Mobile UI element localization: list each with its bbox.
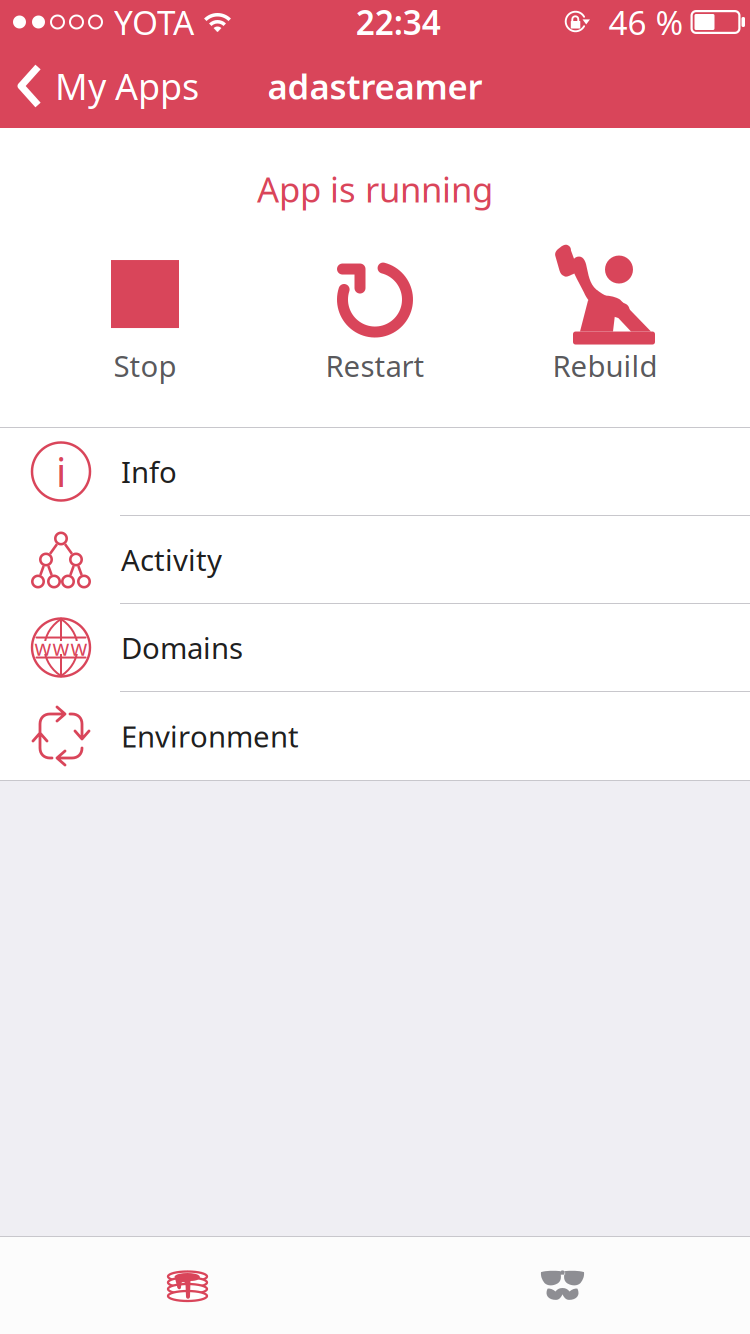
button[interactable]: Rebuild [490,228,720,393]
staticText: w [70,633,87,662]
button[interactable]: My Apps [0,51,250,121]
staticText: Domains [121,628,243,667]
staticText: Restart [325,346,424,385]
staticText: App is running [257,166,493,212]
button[interactable]: w [0,604,750,692]
staticText: adastreamer [267,63,482,109]
button[interactable]: Account [375,1237,750,1334]
staticText: Environment [121,716,299,755]
staticText: i [56,445,66,498]
staticText: My Apps [55,62,199,110]
staticText: YOTA [114,0,194,44]
staticText: 22:34 [356,0,441,44]
staticText: Rebuild [552,346,657,385]
staticText: Info [121,452,177,491]
button[interactable]: i [0,428,750,516]
button[interactable]: Restart [260,228,490,393]
staticText: w [34,633,51,662]
staticText: w [52,633,69,662]
button[interactable]: Stop [30,228,260,393]
button[interactable]: Apps [0,1237,375,1334]
staticText: 46 % [608,0,683,44]
button[interactable]: Activity [0,516,750,604]
staticText: Activity [121,540,222,579]
button[interactable]: Environment [0,692,750,780]
staticText: Stop [113,346,176,385]
